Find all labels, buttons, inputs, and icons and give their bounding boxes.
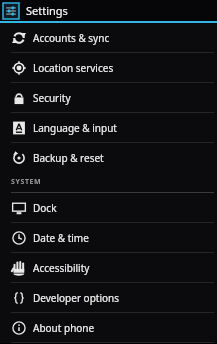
staticText: Dock bbox=[33, 201, 57, 215]
button[interactable]: About phone bbox=[0, 313, 217, 342]
button[interactable]: Accounts & sync bbox=[0, 23, 217, 52]
staticText: About phone bbox=[33, 321, 95, 335]
button[interactable]: Security bbox=[0, 83, 217, 112]
staticText: Location services bbox=[33, 61, 114, 75]
staticText: Backup & reset bbox=[33, 151, 104, 165]
button[interactable]: Location services bbox=[0, 53, 217, 82]
button[interactable]: Settings app icon bbox=[0, 0, 217, 21]
staticText: Accounts & sync bbox=[33, 31, 110, 45]
staticText: Date & time bbox=[33, 231, 89, 245]
staticText: Language & input bbox=[33, 121, 117, 135]
button[interactable]: Dock bbox=[0, 193, 217, 222]
button[interactable]: Backup & reset bbox=[0, 143, 217, 172]
staticText: Developer options bbox=[33, 291, 120, 305]
button[interactable]: Date & time bbox=[0, 223, 217, 252]
button[interactable]: Accessibility bbox=[0, 253, 217, 282]
other: Settings app icon bbox=[3, 3, 19, 19]
staticText: Security bbox=[33, 91, 71, 105]
staticText: SYSTEM bbox=[11, 177, 42, 187]
staticText: Settings bbox=[26, 3, 68, 18]
staticText: Accessibility bbox=[33, 261, 90, 275]
button[interactable]: Language & input bbox=[0, 113, 217, 142]
button[interactable]: Developer options bbox=[0, 283, 217, 312]
